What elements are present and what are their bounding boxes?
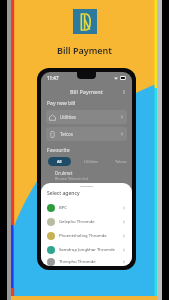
button[interactable]: Telcos [113, 157, 129, 166]
staticText: Utilities [60, 114, 76, 120]
staticText: Select agency [47, 190, 80, 197]
button[interactable]: Phuentsholing Thromde [47, 229, 126, 243]
staticText: Druknet [55, 170, 73, 176]
staticText: All [57, 159, 62, 164]
staticText: 11:47 [47, 75, 59, 81]
button[interactable]: All [48, 157, 71, 166]
staticText: BPC [59, 205, 67, 211]
button[interactable]: BPC [47, 201, 126, 215]
button[interactable]: Samdrup Jongkhar Thromde [47, 243, 126, 257]
staticText: Favourite [47, 147, 70, 154]
button[interactable]: Utilities [46, 110, 127, 124]
staticText: Telcos [60, 131, 73, 137]
button[interactable]: Thimphu Thromde [47, 257, 126, 266]
staticText: Bill Payment [70, 88, 103, 95]
button[interactable]: Telcos [46, 127, 127, 141]
staticText: Samdrup Jongkhar Thromde [59, 247, 115, 253]
button[interactable]: Utilities [82, 157, 101, 166]
staticText: Gelephu Thromde [59, 219, 95, 225]
staticText: Utilities [84, 159, 99, 164]
staticText: Bill Payment [57, 44, 112, 56]
staticText: Telcos [115, 159, 127, 164]
button[interactable]: More [121, 89, 126, 94]
staticText: Bhutan Telecom Ltd [55, 176, 88, 181]
staticText: Pay new bill [47, 100, 76, 107]
staticText: Thimphu Thromde [59, 259, 96, 265]
staticText: Phuentsholing Thromde [59, 233, 107, 239]
button[interactable]: Gelephu Thromde [47, 215, 126, 229]
